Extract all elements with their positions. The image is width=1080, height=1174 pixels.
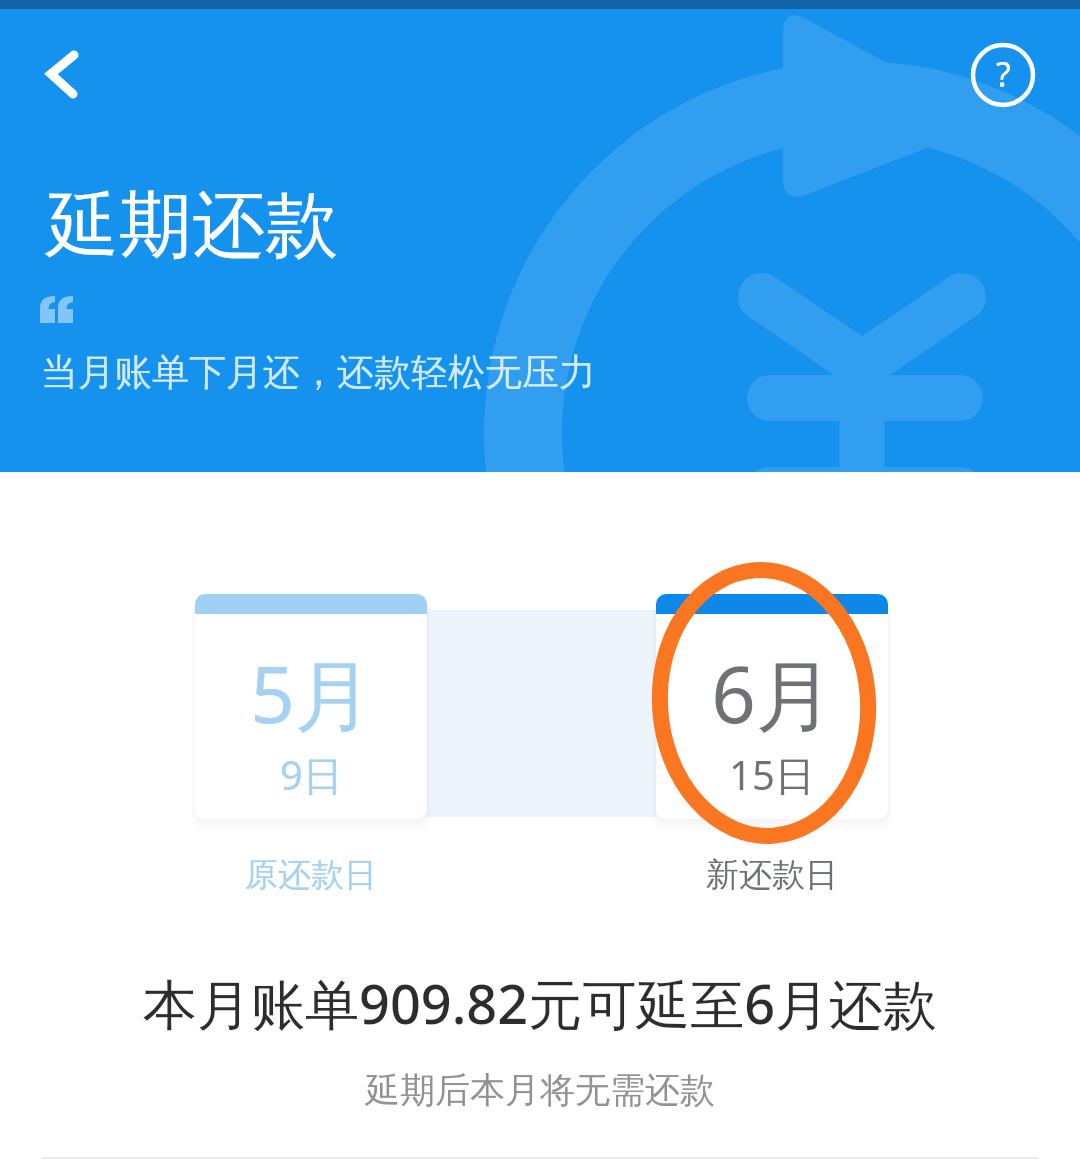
staticText: 6月 bbox=[711, 640, 834, 747]
staticText: 延期后本月将无需还款 bbox=[365, 1068, 715, 1112]
button[interactable]: Help bbox=[963, 35, 1043, 115]
staticText: 原还款日 bbox=[245, 854, 377, 896]
staticText: ? bbox=[996, 51, 1011, 97]
staticText: 9日 bbox=[280, 747, 343, 802]
staticText: 延期还款 bbox=[46, 180, 338, 272]
staticText: 15日 bbox=[729, 747, 815, 802]
staticText: 新还款日 bbox=[706, 854, 838, 896]
staticText: 本月账单909.82元可延至6月还款 bbox=[143, 966, 938, 1040]
staticText: 5月 bbox=[250, 640, 373, 747]
staticText: 当月账单下月还，还款轻松无压力 bbox=[41, 349, 596, 396]
button[interactable]: Back bbox=[14, 30, 106, 122]
